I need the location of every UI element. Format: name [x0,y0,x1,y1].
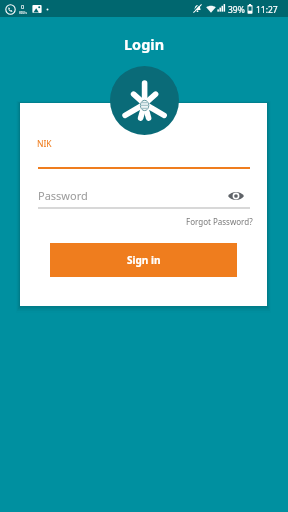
button[interactable]: Password [38,188,250,210]
staticText: KB/s [19,10,28,15]
staticText: Login [124,34,165,54]
button[interactable]: Show password [222,182,250,210]
staticText: Sign in [127,253,161,267]
staticText: NIK [37,138,52,150]
staticText: 39% [228,4,245,16]
staticText: Password [38,188,88,203]
staticText: 0 [21,3,25,10]
staticText: Forgot Password? [186,216,253,227]
button[interactable]: Sign in [50,243,237,277]
button[interactable]: NIK [38,136,250,168]
staticText: 11:27 [256,4,278,16]
button[interactable]: Forgot Password? [140,213,253,229]
